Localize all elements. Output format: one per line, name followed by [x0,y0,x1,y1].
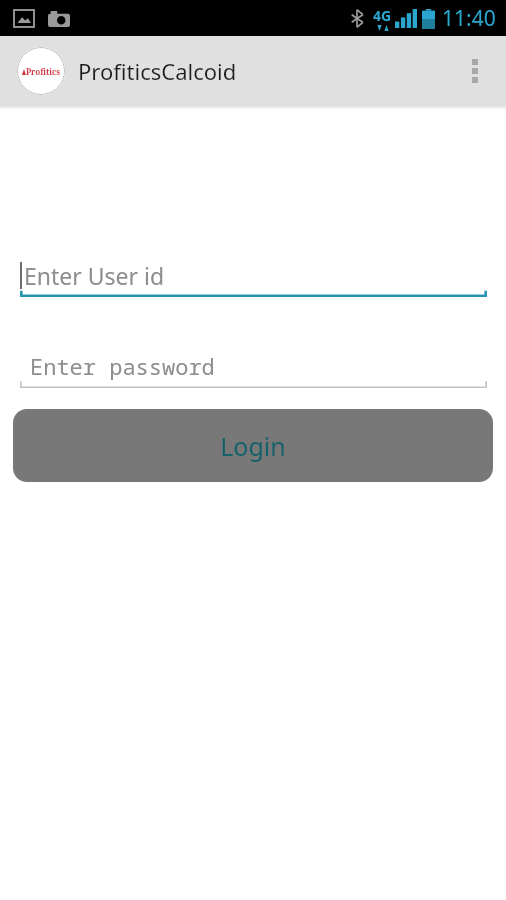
button[interactable]: Enter password [20,344,487,388]
button[interactable]: More options [458,54,492,88]
staticText: 11:40 [442,4,496,33]
staticText: Login [220,429,286,463]
staticText: Enter User id [24,260,165,291]
staticText: Enter password [30,351,215,381]
staticText: 4G [373,6,392,25]
button[interactable]: Enter User id [20,253,487,297]
staticText: ProfiticsCalcoid [78,56,237,86]
staticText: Profitics [26,66,61,77]
button[interactable]: Login [13,409,493,482]
